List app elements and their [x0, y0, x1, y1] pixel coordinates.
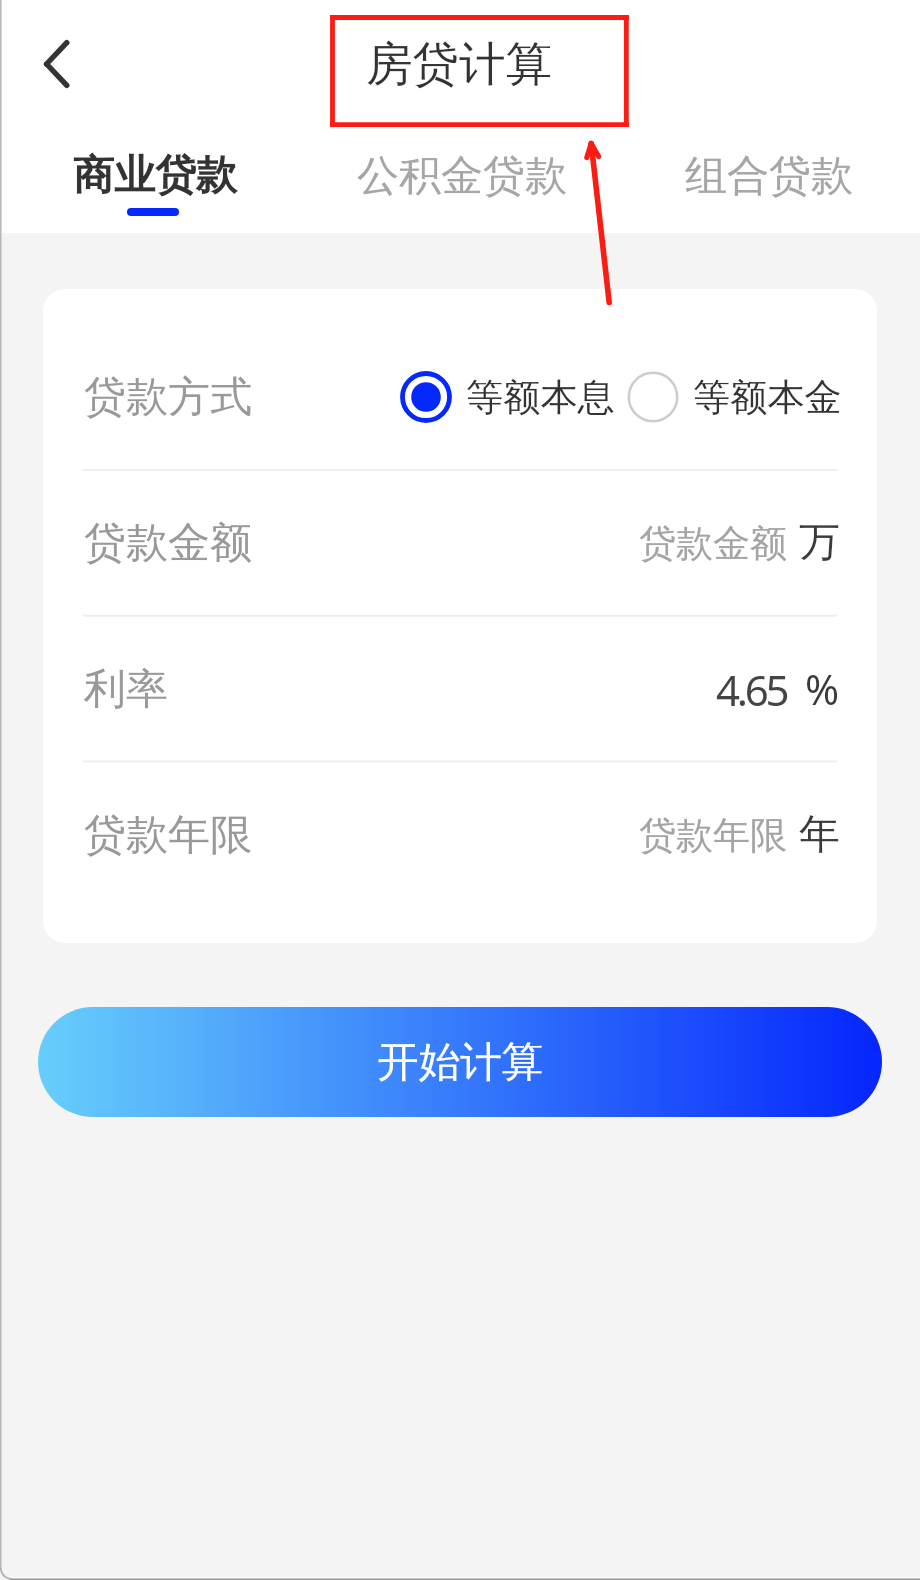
staticText: 贷款金额 [84, 517, 252, 570]
staticText: 商业贷款 [73, 150, 237, 202]
button[interactable]: 贷款年限 [43, 762, 877, 908]
staticText: 公积金贷款 [357, 150, 567, 203]
button[interactable]: 利率 [43, 616, 877, 762]
staticText: 4.65 [716, 661, 787, 718]
staticText: % [805, 661, 840, 717]
button[interactable]: 商业贷款 [0, 150, 306, 216]
staticText: 等额本金 [693, 374, 842, 421]
staticText: 开始计算 [377, 1036, 543, 1088]
staticText: 贷款年限 [84, 809, 252, 862]
button[interactable]: 等额本金 [627, 371, 842, 423]
button[interactable]: Back [16, 23, 96, 103]
button[interactable]: 等额本息 [400, 371, 615, 423]
button[interactable]: 组合贷款 [613, 150, 920, 209]
button[interactable]: 贷款金额 [43, 470, 877, 616]
staticText: 万 [799, 517, 840, 569]
staticText: 年 [799, 809, 840, 861]
staticText: 利率 [84, 663, 168, 716]
staticText: 组合贷款 [685, 150, 853, 203]
button[interactable]: 公积金贷款 [306, 150, 613, 209]
staticText: 房贷计算 [366, 35, 552, 94]
staticText: 等额本息 [466, 374, 615, 421]
staticText: 贷款方式 [84, 371, 252, 424]
staticText: 贷款金额 [639, 520, 787, 567]
staticText: 贷款年限 [639, 812, 787, 859]
button[interactable]: 开始计算 [38, 1007, 882, 1117]
button[interactable]: 贷款方式 [43, 324, 877, 470]
